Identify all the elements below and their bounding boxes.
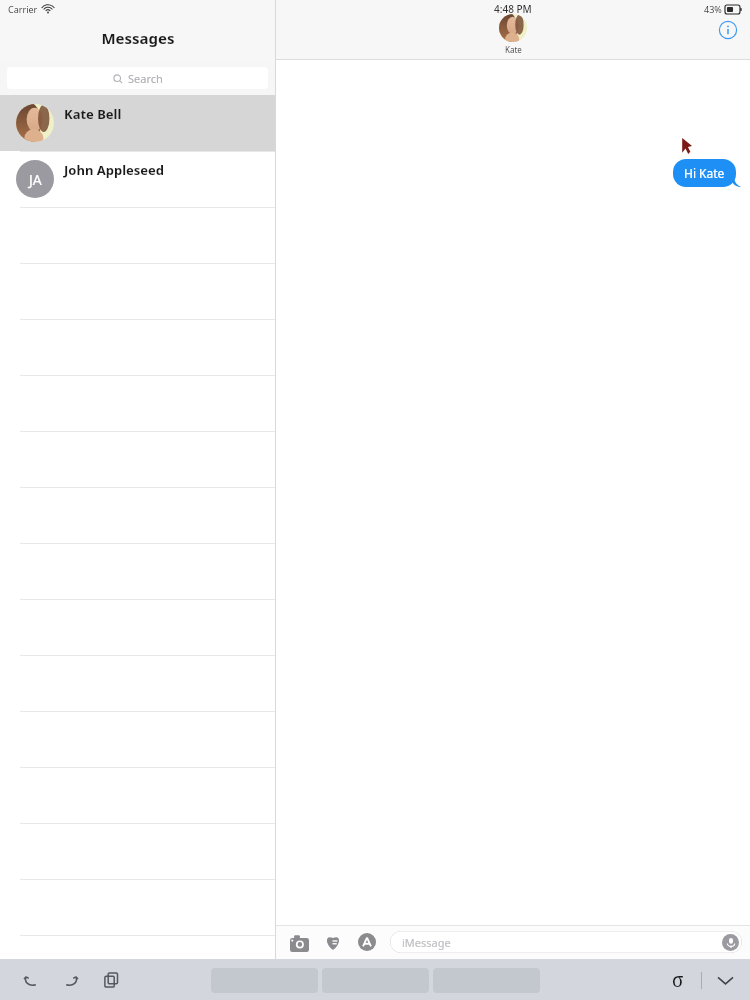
button[interactable]: Undo — [18, 967, 44, 993]
staticText: Search — [128, 71, 163, 86]
staticText: σ — [672, 967, 684, 993]
button[interactable]: Handwriting — [665, 967, 691, 993]
button[interactable]: Hide keyboard — [712, 967, 738, 993]
staticText: Hi Kate — [684, 165, 725, 181]
staticText: 4:48 PM — [494, 2, 532, 16]
button[interactable]: JA — [0, 151, 275, 207]
button[interactable]: iMessage — [390, 931, 742, 953]
staticText: JA — [29, 170, 42, 189]
staticText: Messages — [101, 28, 175, 48]
button[interactable]: Kate — [499, 14, 527, 55]
button[interactable]: Dictate — [722, 934, 739, 951]
button[interactable]: Kate Bell — [0, 95, 275, 151]
button[interactable]: Search — [7, 67, 268, 89]
button[interactable]: Redo — [58, 967, 84, 993]
button[interactable]: Camera — [288, 931, 310, 953]
button[interactable]: Details — [718, 20, 738, 40]
button[interactable]: Paste — [98, 967, 124, 993]
button[interactable]: Hi Kate — [673, 159, 736, 187]
staticText: Kate Bell — [64, 105, 122, 123]
staticText: John Appleseed — [64, 161, 165, 179]
staticText: iMessage — [402, 935, 451, 950]
button[interactable]: Digital Touch — [322, 931, 344, 953]
staticText: Carrier — [8, 3, 38, 15]
staticText: Kate — [505, 44, 522, 55]
button[interactable]: App Store — [356, 931, 378, 953]
staticText: 43% — [704, 3, 722, 15]
